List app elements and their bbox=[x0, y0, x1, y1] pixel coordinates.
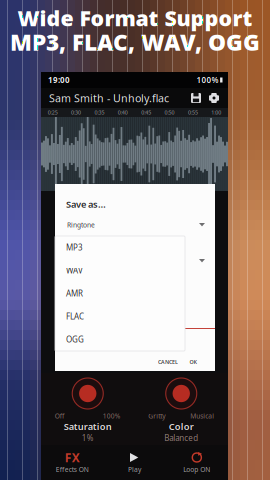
staticText: Balanced bbox=[164, 433, 198, 443]
staticText: MP3, FLAC, WAV, OGG bbox=[10, 27, 260, 57]
staticText: 100% bbox=[197, 75, 219, 85]
button[interactable]: Settings bbox=[205, 89, 223, 107]
button[interactable]: Play bbox=[103, 445, 166, 480]
staticText: 100% bbox=[103, 412, 121, 420]
staticText: 0:35 bbox=[94, 109, 104, 116]
staticText: OGG bbox=[66, 334, 84, 345]
staticText: Save as… bbox=[66, 198, 106, 210]
staticText: 0:25 bbox=[48, 109, 58, 116]
staticText: Saturation bbox=[64, 420, 112, 433]
button[interactable]: Loop ON bbox=[166, 445, 228, 480]
button[interactable]: MP3 bbox=[55, 236, 185, 259]
staticText: Color bbox=[169, 420, 194, 433]
staticText: 1% bbox=[82, 433, 94, 443]
staticText: FLAC bbox=[66, 311, 84, 322]
staticText: Loop ON bbox=[183, 465, 210, 474]
staticText: FX bbox=[65, 449, 80, 465]
staticText: 0:30 bbox=[71, 109, 81, 116]
button[interactable]: Save bbox=[187, 89, 205, 107]
staticText: Play bbox=[128, 465, 141, 474]
staticText: Ringtone bbox=[67, 221, 95, 229]
staticText: 1:00 bbox=[211, 109, 221, 116]
staticText: 0:45 bbox=[141, 109, 151, 116]
staticText: 0:55 bbox=[188, 109, 198, 116]
staticText: CANCEL bbox=[158, 358, 178, 366]
button[interactable]: AMR bbox=[55, 282, 185, 305]
button[interactable]: WAV bbox=[55, 259, 185, 282]
button[interactable]: OK bbox=[183, 355, 203, 369]
button[interactable]: OGG bbox=[55, 328, 185, 351]
staticText: Effects ON bbox=[56, 465, 89, 474]
button[interactable]: FX bbox=[41, 445, 103, 480]
button[interactable]: Ringtone bbox=[55, 218, 215, 232]
staticText: Sam Smith - Unholy.flac bbox=[49, 91, 169, 105]
staticText: Gritty bbox=[148, 412, 165, 420]
staticText: 19:00 bbox=[48, 75, 70, 85]
staticText: 0:40 bbox=[118, 109, 128, 116]
button[interactable]: FLAC bbox=[55, 305, 185, 328]
staticText: Wide Format Support bbox=[17, 4, 252, 32]
button[interactable]: CANCEL bbox=[153, 355, 183, 369]
staticText: WAV bbox=[66, 265, 83, 276]
staticText: MP3 bbox=[66, 242, 83, 253]
staticText: AMR bbox=[66, 288, 83, 299]
staticText: Off bbox=[55, 412, 65, 420]
staticText: Musical bbox=[190, 412, 214, 420]
staticText: 0:50 bbox=[165, 109, 175, 116]
staticText: OK bbox=[189, 358, 196, 366]
